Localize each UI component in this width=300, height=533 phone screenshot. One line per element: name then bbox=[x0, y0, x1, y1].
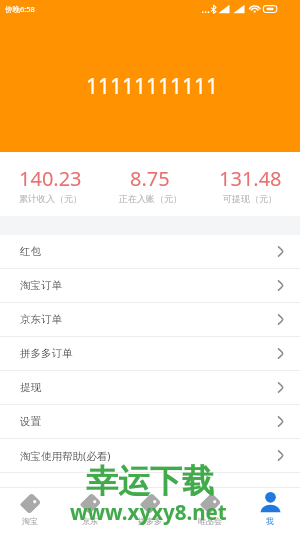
button[interactable]: 设置 bbox=[0, 405, 300, 438]
staticText: 11111111111 bbox=[86, 72, 219, 101]
staticText: 正在入账（元） bbox=[119, 193, 182, 204]
staticText: 红包 bbox=[20, 245, 41, 258]
staticText: 可提现（元） bbox=[223, 193, 277, 204]
staticText: 拼多多订单 bbox=[20, 347, 73, 360]
button[interactable]: 拼多多订单 bbox=[0, 337, 300, 370]
button[interactable]: 京东 bbox=[60, 488, 120, 533]
button[interactable]: 唯品会 bbox=[180, 488, 240, 533]
staticText: 淘宝使用帮助(必看) bbox=[20, 449, 111, 463]
staticText: 累计收入（元） bbox=[19, 193, 82, 204]
staticText: 傍晚6:58 bbox=[5, 4, 35, 14]
staticText: 京东 bbox=[82, 516, 98, 526]
button[interactable]: 淘宝 bbox=[0, 488, 60, 533]
button[interactable]: 拼多多 bbox=[120, 488, 180, 533]
staticText: 幸运下载 bbox=[86, 461, 214, 501]
button[interactable]: 131.48 bbox=[200, 152, 300, 204]
staticText: 我 bbox=[266, 516, 274, 526]
button[interactable]: 我 bbox=[240, 488, 300, 533]
staticText: 淘宝订单 bbox=[20, 279, 62, 292]
button[interactable]: 提现 bbox=[0, 371, 300, 404]
button[interactable]: 8.75 bbox=[100, 152, 200, 204]
staticText: 提现 bbox=[20, 381, 41, 394]
button[interactable]: 淘宝使用帮助(必看) bbox=[0, 439, 300, 472]
staticText: www.xyxy8.net bbox=[70, 498, 227, 526]
button[interactable]: 淘宝订单 bbox=[0, 269, 300, 302]
staticText: 淘宝 bbox=[22, 516, 38, 526]
staticText: 拼多多 bbox=[138, 516, 162, 526]
staticText: 131.48 bbox=[219, 165, 282, 192]
staticText: 8.75 bbox=[130, 165, 170, 192]
staticText: 京东订单 bbox=[20, 313, 62, 326]
button[interactable]: 京东订单 bbox=[0, 303, 300, 336]
staticText: 140.23 bbox=[19, 165, 82, 192]
button[interactable]: 红包 bbox=[0, 235, 300, 268]
button[interactable]: 140.23 bbox=[0, 152, 100, 204]
staticText: 设置 bbox=[20, 415, 41, 428]
staticText: 唯品会 bbox=[198, 516, 222, 526]
